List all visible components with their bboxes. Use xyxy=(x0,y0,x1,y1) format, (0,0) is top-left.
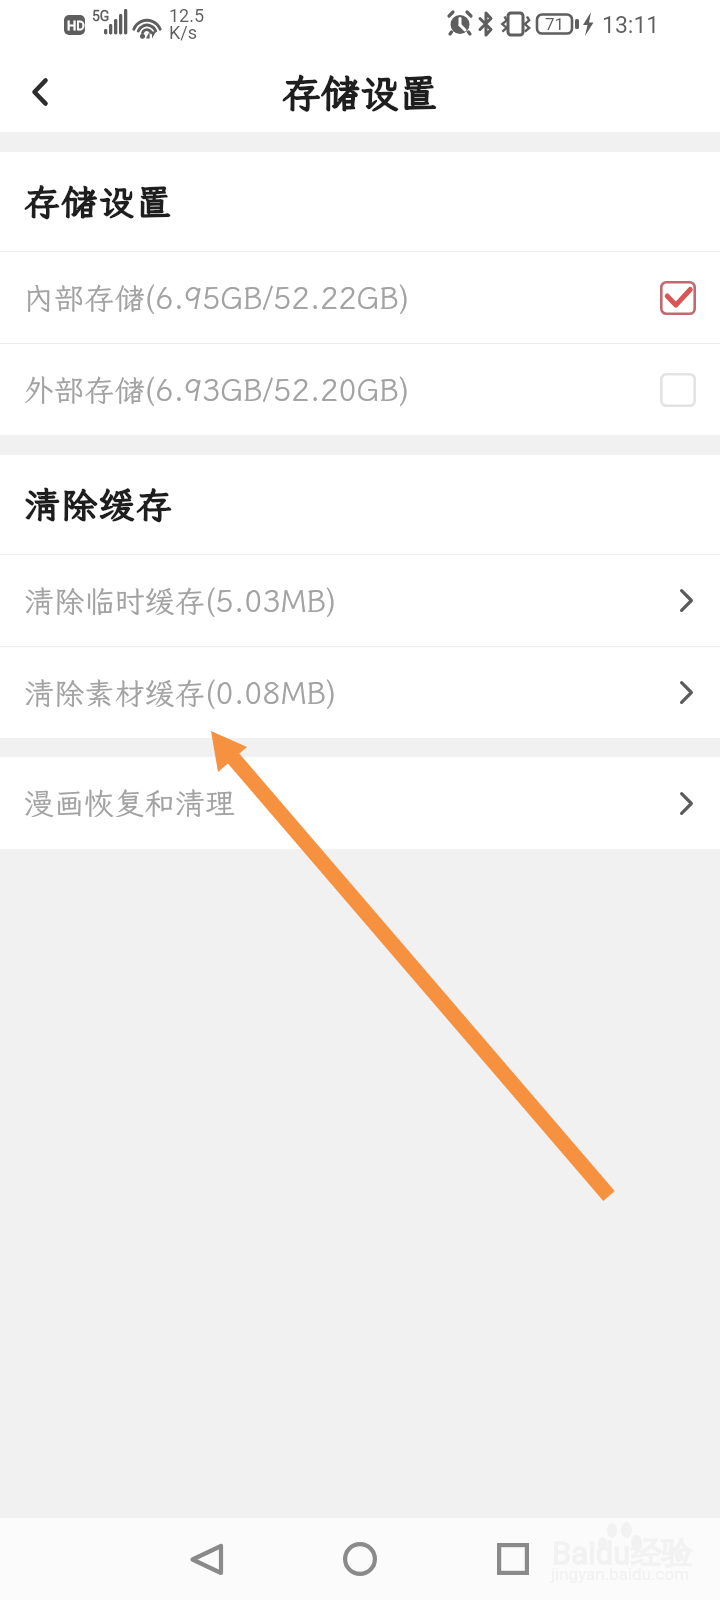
staticText: 存储设置 xyxy=(24,178,174,225)
staticText: jingyan.baidu.com xyxy=(551,1564,690,1584)
button[interactable]: 清除素材缓存(0.08MB) xyxy=(0,647,720,738)
button[interactable]: 内部存储(6.95GB/52.22GB) xyxy=(0,252,720,343)
staticText: 71 xyxy=(545,14,565,34)
button[interactable]: 外部存储(6.93GB/52.20GB) xyxy=(0,344,720,435)
button[interactable]: Back xyxy=(162,1518,252,1600)
button[interactable]: Back xyxy=(0,52,80,132)
button[interactable]: 漫画恢复和清理 xyxy=(0,757,720,849)
staticText: HD xyxy=(67,18,85,33)
staticText: 5G xyxy=(92,8,110,24)
staticText: 清除临时缓存(5.03MB) xyxy=(24,581,680,621)
button[interactable]: Recents xyxy=(468,1518,558,1600)
staticText: 12.5 xyxy=(169,5,205,26)
staticText: 13:11 xyxy=(602,12,660,39)
staticText: 存储设置 xyxy=(282,67,439,118)
staticText: K/s xyxy=(169,22,198,43)
staticText: 外部存储(6.93GB/52.20GB) xyxy=(24,370,660,410)
staticText: 内部存储(6.95GB/52.22GB) xyxy=(24,278,660,318)
staticText: 清除素材缓存(0.08MB) xyxy=(24,673,680,713)
staticText: 漫画恢复和清理 xyxy=(24,783,680,823)
button[interactable]: 清除临时缓存(5.03MB) xyxy=(0,555,720,646)
staticText: 清除缓存 xyxy=(24,481,174,528)
staticText: Baidu经验 xyxy=(552,1534,693,1573)
button[interactable]: Home xyxy=(315,1518,405,1600)
